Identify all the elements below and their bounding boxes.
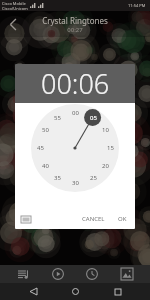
staticText: CANCEL [82,215,105,223]
staticText: Crystal Ringtones [42,15,108,26]
button[interactable]: CANCEL [78,212,109,226]
staticText: Cisco Mobile [2,1,26,6]
button[interactable]: Recents [108,283,128,300]
staticText: 05 [90,114,97,122]
staticText: 10 [102,126,109,134]
staticText: Cisco/Unicom [2,6,28,11]
button[interactable]: Timer [80,265,104,283]
staticText: 25 [90,174,97,182]
staticText: 55 [54,114,61,122]
staticText: 00 [72,109,79,117]
staticText: 30 [72,179,79,187]
staticText: 00:06 [41,65,110,102]
staticText: 15 [107,144,114,152]
button[interactable]: Image [115,265,139,283]
staticText: 20 [102,162,109,170]
staticText: OK [118,215,127,223]
staticText: 45 [37,144,44,152]
button[interactable]: 00:06 [15,64,135,103]
button[interactable]: Back [23,283,43,300]
button[interactable]: Home [65,283,85,300]
button[interactable]: Play [46,265,70,283]
staticText: 50 [42,126,49,134]
button[interactable]: Minute picker [31,104,119,192]
staticText: 40 [42,162,49,170]
staticText: 11:54 PM [128,3,146,8]
button[interactable]: Back [0,11,26,37]
staticText: 35 [54,174,61,182]
staticText: 00:27 [67,26,83,34]
button[interactable]: Playlist [11,265,35,283]
button[interactable]: OK [114,212,131,226]
button[interactable]: Keyboard input [19,213,32,226]
